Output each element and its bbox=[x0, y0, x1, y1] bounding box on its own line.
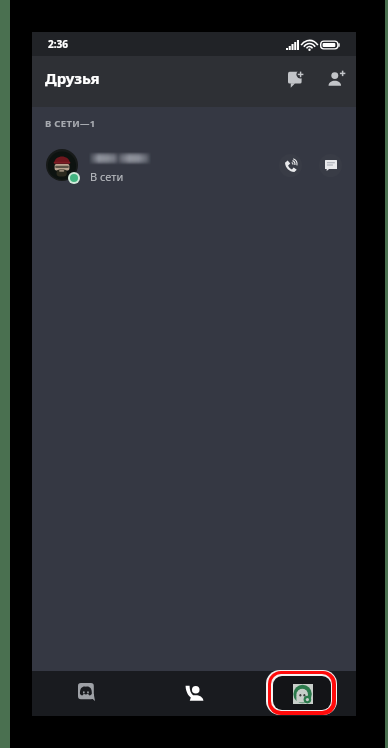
staticText: В СЕТИ—1 bbox=[45, 117, 96, 130]
button[interactable]: New message bbox=[276, 58, 316, 98]
button[interactable]: Friends bbox=[140, 671, 248, 716]
button[interactable]: Profile bbox=[248, 671, 356, 716]
button[interactable]: Add friend bbox=[316, 58, 356, 98]
staticText: Друзья bbox=[45, 68, 100, 88]
button[interactable]: Message bbox=[319, 154, 342, 177]
staticText: 2:36 bbox=[48, 37, 68, 51]
button[interactable]: В сети bbox=[32, 143, 356, 187]
button[interactable]: Servers bbox=[32, 671, 140, 716]
button[interactable]: Call bbox=[279, 154, 302, 177]
staticText: В сети bbox=[90, 169, 124, 184]
